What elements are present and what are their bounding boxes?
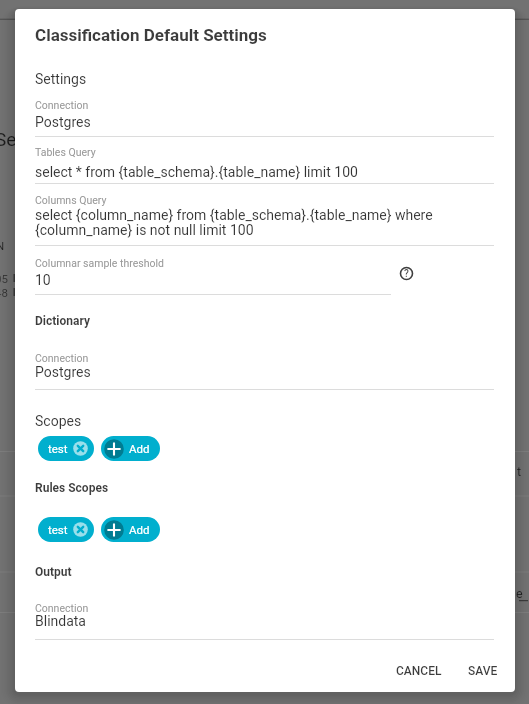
- staticText: Connection: [35, 602, 89, 614]
- staticText: N: [0, 239, 5, 252]
- staticText: Classification Default Settings: [35, 25, 267, 45]
- button[interactable]: SAVE: [460, 658, 506, 684]
- staticText: test: [48, 442, 68, 455]
- staticText: select * from {table_schema}.{table_name…: [35, 164, 358, 180]
- staticText: select {column_name} from {table_schema}…: [35, 207, 494, 238]
- staticText: 05: [0, 272, 8, 285]
- staticText: Columns Query: [35, 194, 107, 206]
- staticText: Connection: [35, 99, 89, 111]
- staticText: Scopes: [35, 413, 82, 429]
- staticText: ?: [404, 268, 409, 280]
- staticText: SAVE: [468, 664, 498, 678]
- staticText: e: [516, 586, 523, 601]
- staticText: Blindata: [35, 613, 86, 629]
- staticText: Add: [129, 442, 150, 455]
- staticText: 10: [35, 272, 51, 288]
- staticText: Se: [0, 128, 17, 150]
- button[interactable]: Help: [395, 262, 418, 285]
- staticText: t: [517, 464, 522, 479]
- staticText: Settings: [35, 71, 87, 87]
- button[interactable]: Add: [101, 517, 160, 542]
- staticText: CANCEL: [396, 664, 442, 678]
- staticText: test: [48, 523, 68, 536]
- button[interactable]: test: [38, 517, 94, 542]
- button[interactable]: Add: [101, 436, 160, 461]
- staticText: Tables Query: [35, 146, 96, 158]
- button[interactable]: CANCEL: [388, 658, 450, 684]
- staticText: Columnar sample threshold: [35, 257, 164, 269]
- staticText: Rules Scopes: [35, 481, 109, 495]
- staticText: Add: [129, 523, 150, 536]
- staticText: Dictionary: [35, 314, 90, 328]
- staticText: Output: [35, 565, 72, 579]
- staticText: Postgres: [35, 364, 91, 380]
- staticText: Postgres: [35, 114, 91, 130]
- staticText: 48: [0, 286, 8, 299]
- button[interactable]: test: [38, 436, 94, 461]
- staticText: Connection: [35, 352, 89, 364]
